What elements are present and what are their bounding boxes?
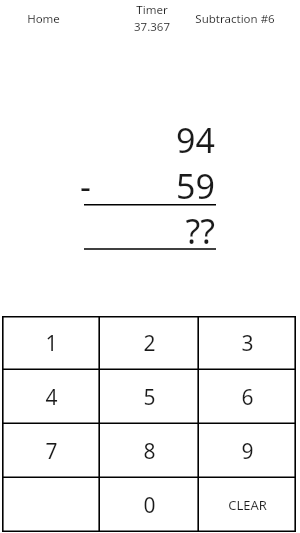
staticText: Subtraction #6 <box>195 11 275 27</box>
button[interactable]: 0 <box>100 478 199 532</box>
staticText: 0 <box>143 491 156 520</box>
staticText: CLEAR <box>228 496 267 514</box>
button[interactable]: 6 <box>199 370 296 424</box>
button[interactable]: 2 <box>100 316 199 370</box>
staticText: 37.367 <box>134 19 170 35</box>
button[interactable]: 7 <box>2 424 100 478</box>
staticText: 6 <box>241 383 254 412</box>
staticText: - <box>80 163 91 209</box>
button[interactable]: 4 <box>2 370 100 424</box>
button[interactable]: Timer <box>122 2 182 35</box>
staticText: ?? <box>185 208 215 250</box>
staticText: 5 <box>143 383 156 412</box>
button[interactable]: 9 <box>199 424 296 478</box>
staticText: 7 <box>45 437 58 466</box>
staticText: Timer <box>136 2 168 18</box>
button[interactable]: 1 <box>2 316 100 370</box>
staticText: 9 <box>241 437 254 466</box>
button[interactable]: CLEAR <box>199 478 296 532</box>
staticText: 59 <box>176 163 215 209</box>
button[interactable]: 3 <box>199 316 296 370</box>
button[interactable]: 8 <box>100 424 199 478</box>
staticText: 8 <box>143 437 156 466</box>
staticText: 3 <box>241 329 254 358</box>
staticText: 94 <box>176 117 215 163</box>
staticText: 4 <box>45 383 58 412</box>
button[interactable]: Home <box>14 6 72 32</box>
staticText: 1 <box>45 329 58 358</box>
staticText: Home <box>27 11 60 27</box>
button[interactable]: 5 <box>100 370 199 424</box>
staticText: 2 <box>143 329 156 358</box>
